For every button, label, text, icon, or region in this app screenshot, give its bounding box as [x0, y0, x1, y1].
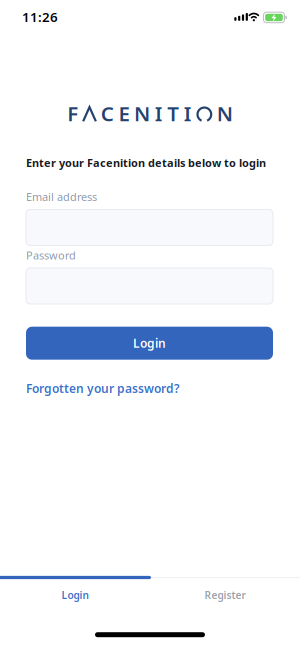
staticText: Enter your Facenition details below to l… [26, 155, 266, 170]
button[interactable]: Forgotten your password? [26, 380, 180, 396]
staticText: F [67, 100, 78, 127]
staticText: 11:26 [22, 8, 58, 26]
staticText: N [217, 100, 233, 127]
staticText: Register [204, 588, 245, 602]
staticText: Login [133, 335, 166, 351]
button[interactable]: Login [0, 582, 150, 608]
staticText: Email address [26, 189, 97, 204]
staticText: N [134, 100, 150, 127]
staticText: T [167, 100, 179, 127]
button[interactable]: Register [150, 582, 300, 608]
staticText: Password [26, 248, 76, 262]
staticText: Login [61, 588, 88, 602]
staticText: Forgotten your password? [26, 380, 180, 396]
staticText: I [155, 100, 163, 127]
staticText: I [184, 100, 192, 127]
staticText: E [118, 100, 129, 127]
button[interactable]: Login [26, 327, 273, 360]
staticText: C [101, 100, 114, 127]
